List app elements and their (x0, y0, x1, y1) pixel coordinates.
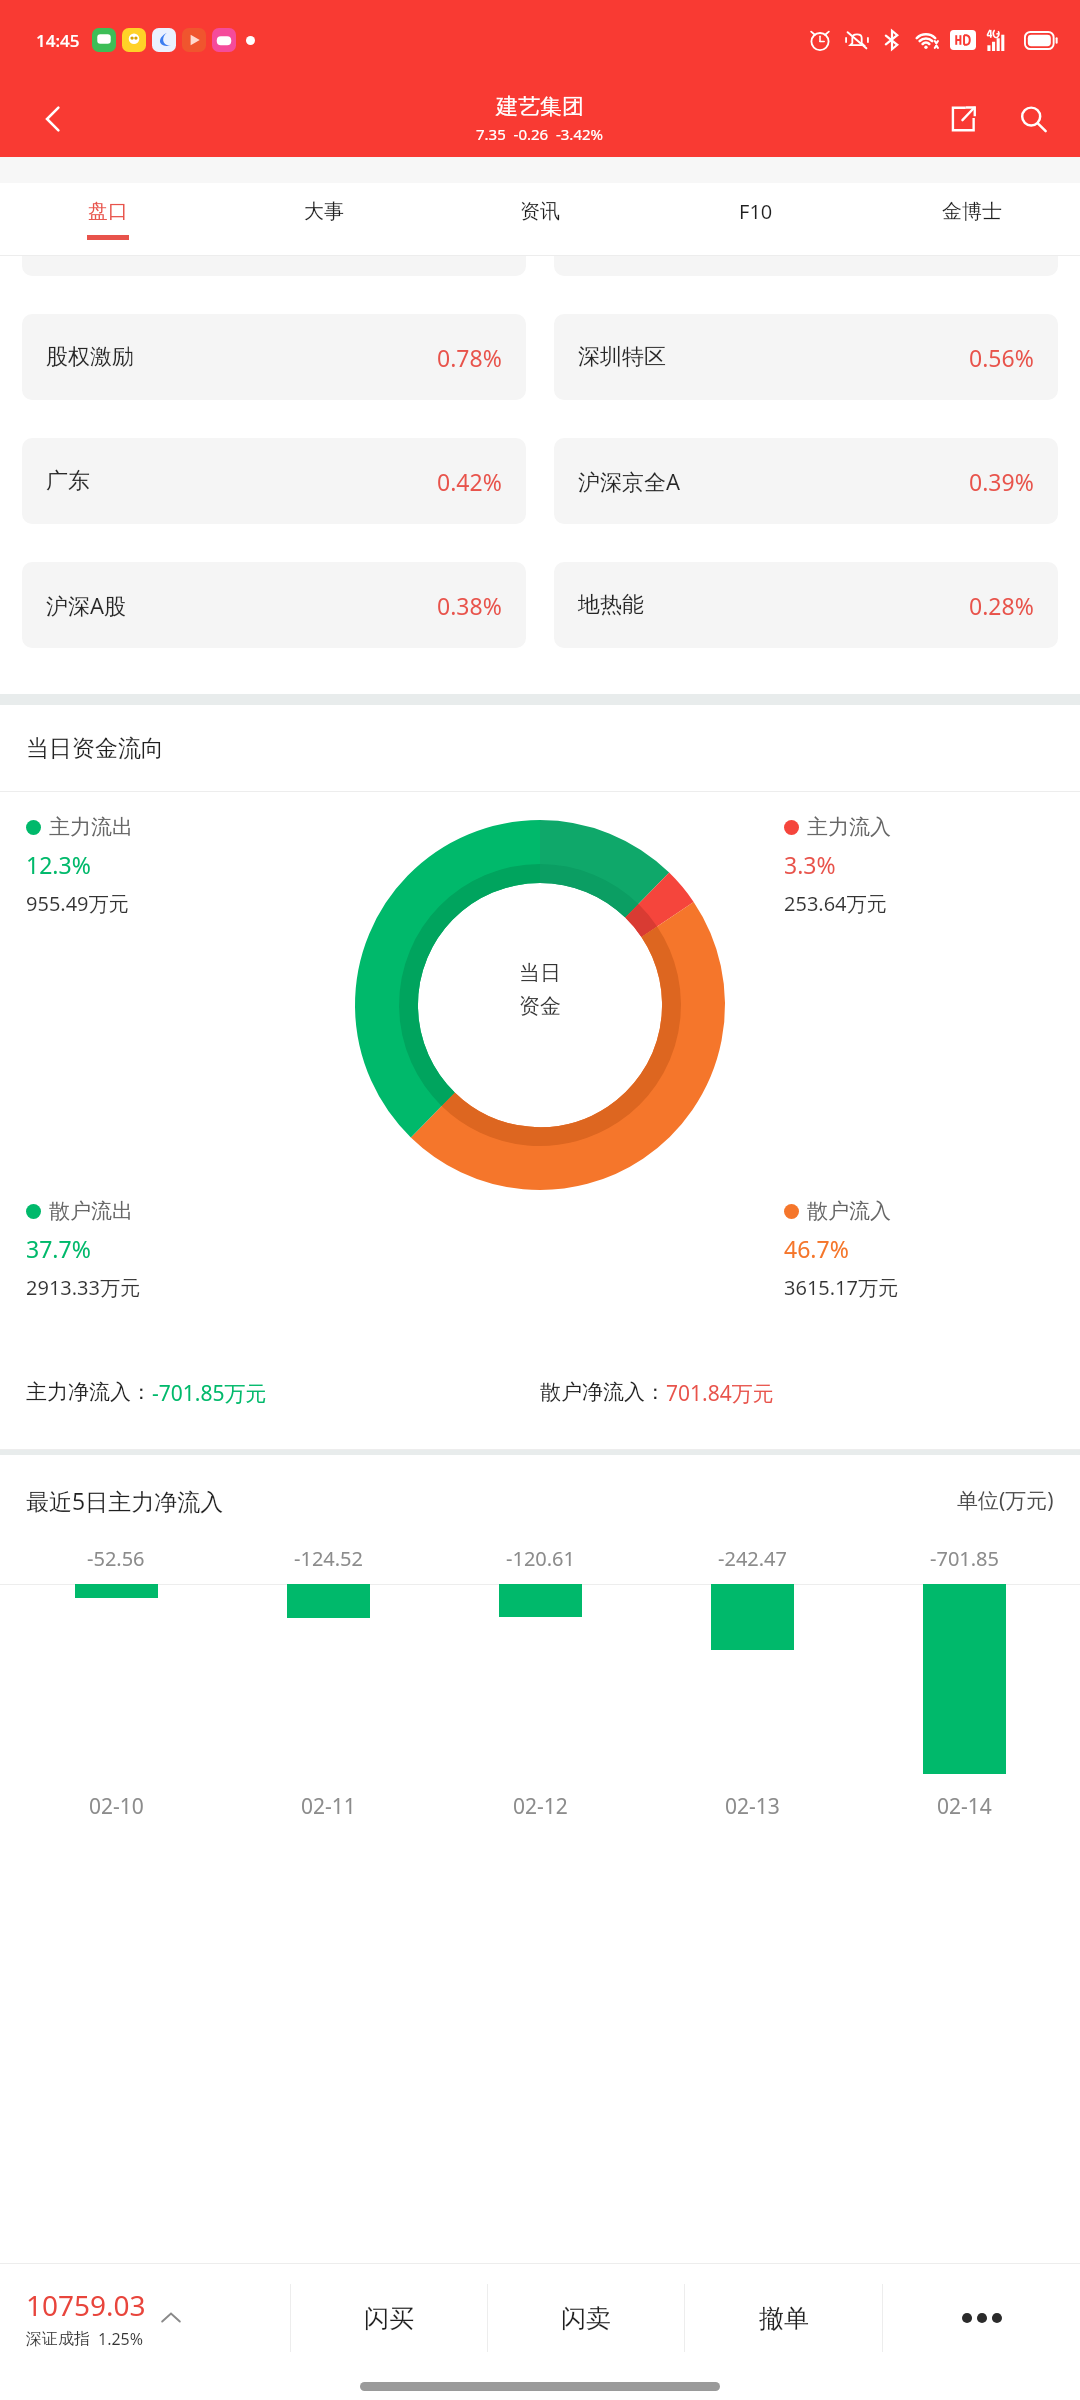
staticText: 14:45 (36, 29, 80, 52)
staticText: 1.25% (98, 2328, 144, 2350)
staticText: 单位(万元) (957, 1486, 1054, 1515)
staticText: 散户流出 (49, 1198, 133, 1224)
button[interactable]: Share (934, 90, 992, 148)
staticText: 闪买 (364, 2303, 414, 2334)
staticText: 2913.33万元 (26, 1274, 140, 1301)
staticText: 最近5日主力净流入 (26, 1485, 224, 1516)
staticText: 02-12 (513, 1792, 568, 1821)
staticText: 3.3% (784, 849, 836, 880)
staticText: 12.3% (26, 849, 91, 880)
staticText: 闪卖 (561, 2303, 611, 2334)
staticText: 253.64万元 (784, 890, 887, 917)
staticText: 主力流入 (807, 814, 891, 840)
staticText: 10759.03 (26, 2286, 146, 2324)
button[interactable]: 金博士 (864, 183, 1080, 255)
staticText: 7.35 -0.26 -3.42% (476, 124, 604, 144)
staticText: 955.49万元 (26, 890, 129, 917)
staticText: 深圳特区 (578, 343, 666, 371)
staticText: 0.28% (969, 590, 1034, 621)
staticText: 沪深A股 (46, 590, 127, 620)
staticText: 当日 (519, 960, 561, 986)
staticText: 0.56% (969, 342, 1034, 373)
button[interactable]: 大事 (216, 183, 432, 255)
staticText: 0.39% (969, 466, 1034, 497)
staticText: 3615.17万元 (784, 1274, 898, 1301)
button[interactable]: More (883, 2264, 1080, 2372)
staticText: -701.85万元 (152, 1379, 267, 1408)
staticText: -52.56 (87, 1545, 145, 1572)
staticText: 02-13 (725, 1792, 780, 1821)
staticText: 金博士 (942, 199, 1002, 224)
button[interactable]: 沪深A股 (22, 562, 526, 648)
button[interactable]: Search (1004, 90, 1062, 148)
button[interactable]: 股权激励 (22, 314, 526, 400)
staticText: 02-14 (937, 1792, 992, 1821)
staticText: 盘口 (88, 199, 128, 224)
staticText: 地热能 (578, 591, 644, 619)
staticText: -701.85 (930, 1545, 999, 1572)
button[interactable]: 沪深京全A (554, 438, 1058, 524)
staticText: 资讯 (520, 199, 560, 224)
button[interactable]: 盘口 (0, 183, 216, 255)
staticText: 沪深京全A (578, 466, 681, 496)
staticText: F10 (739, 198, 773, 225)
staticText: 散户流入 (807, 1198, 891, 1224)
staticText: 当日资金流向 (26, 734, 164, 763)
button[interactable]: Back (22, 88, 84, 150)
staticText: 大事 (304, 199, 344, 224)
button[interactable]: 地热能 (554, 562, 1058, 648)
button[interactable]: 闪卖 (488, 2264, 684, 2372)
staticText: 37.7% (26, 1233, 91, 1264)
staticText: 主力流出 (49, 814, 133, 840)
staticText: 建艺集团 (496, 93, 584, 121)
staticText: 46.7% (784, 1233, 849, 1264)
button[interactable]: 撤单 (685, 2264, 882, 2372)
staticText: 主力净流入： (26, 1379, 152, 1405)
staticText: 撤单 (759, 2303, 809, 2334)
staticText: -242.47 (718, 1545, 787, 1572)
button[interactable]: 闪买 (291, 2264, 487, 2372)
staticText: 广东 (46, 467, 90, 495)
staticText: 深证成指 (26, 2329, 90, 2349)
staticText: 股权激励 (46, 343, 134, 371)
staticText: 02-11 (301, 1792, 356, 1821)
button[interactable]: F10 (648, 183, 864, 255)
button[interactable]: 10759.03 (0, 2264, 290, 2372)
staticText: 02-10 (89, 1792, 144, 1821)
button[interactable]: 广东 (22, 438, 526, 524)
staticText: 0.78% (437, 342, 502, 373)
button[interactable]: 资讯 (432, 183, 648, 255)
staticText: 701.84万元 (666, 1379, 774, 1408)
staticText: 散户净流入： (540, 1379, 666, 1405)
staticText: 资金 (519, 993, 561, 1019)
staticText: 0.42% (437, 466, 502, 497)
staticText: -120.61 (506, 1545, 575, 1572)
button[interactable]: 深圳特区 (554, 314, 1058, 400)
staticText: 0.38% (437, 590, 502, 621)
staticText: -124.52 (294, 1545, 363, 1572)
